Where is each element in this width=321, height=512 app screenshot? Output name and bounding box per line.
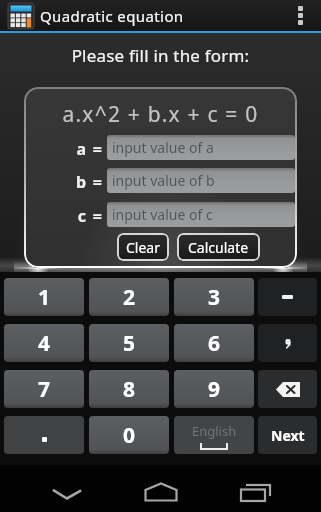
staticText: 9 (208, 375, 221, 404)
button[interactable]: 6 (174, 324, 254, 362)
staticText: Calculate (188, 238, 249, 257)
staticText: 3 (208, 283, 221, 312)
staticText: 7 (38, 375, 51, 404)
button[interactable] (298, 6, 303, 25)
staticText: Clear (126, 238, 160, 257)
staticText: b = (24, 171, 103, 193)
staticText: 4 (38, 329, 51, 358)
button[interactable] (47, 481, 87, 507)
staticText: 0 (123, 421, 136, 450)
staticText: input value of c (112, 205, 213, 224)
staticText: input value of a (112, 138, 214, 157)
staticText: a.x^2 + b.x + c = 0 (24, 100, 297, 129)
button[interactable]: 9 (174, 370, 254, 408)
staticText: 1 (38, 283, 51, 312)
button[interactable]: 2 (89, 278, 169, 316)
button[interactable] (258, 370, 317, 408)
button[interactable]: 5 (89, 324, 169, 362)
staticText: 8 (123, 375, 136, 404)
button[interactable]: English (174, 416, 254, 454)
staticText: Next (271, 426, 305, 445)
button[interactable]: Clear (117, 233, 169, 261)
staticText: input value of b (112, 171, 215, 190)
button[interactable]: input value of c (107, 202, 295, 227)
button[interactable] (141, 479, 181, 505)
staticText: 6 (208, 329, 221, 358)
button[interactable]: input value of a (107, 135, 295, 160)
button[interactable]: 7 (4, 370, 84, 408)
staticText: 2 (123, 283, 136, 312)
staticText: 5 (123, 329, 136, 358)
button[interactable] (237, 479, 277, 505)
button[interactable]: 1 (4, 278, 84, 316)
staticText: Quadratic equation (40, 6, 184, 26)
button[interactable]: input value of b (107, 168, 295, 193)
staticText: Please fill in the form: (0, 44, 321, 67)
button[interactable]: 0 (89, 416, 169, 454)
button[interactable]: Calculate (177, 233, 260, 261)
button[interactable]: 3 (174, 278, 254, 316)
button[interactable] (258, 278, 317, 316)
button[interactable]: 4 (4, 324, 84, 362)
button[interactable] (258, 324, 317, 362)
button[interactable]: 8 (89, 370, 169, 408)
button[interactable] (4, 416, 84, 454)
staticText: a = (24, 138, 103, 160)
button[interactable]: Next (258, 416, 317, 454)
staticText: c = (24, 205, 103, 227)
staticText: English (192, 422, 237, 440)
